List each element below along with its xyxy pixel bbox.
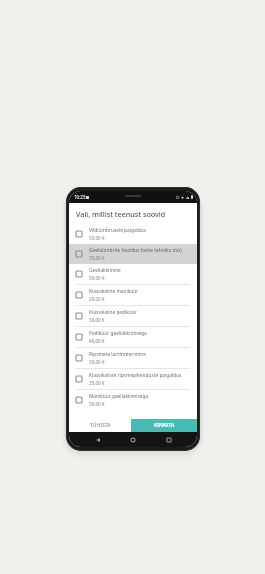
button[interactable]: Klassikaliste ripsmepikenduste paigaldus (69, 369, 197, 389)
staticText: 35,00 € (89, 255, 105, 261)
staticText: 40,00 € (89, 338, 105, 344)
button[interactable]: Klassikaline maniküür (69, 285, 197, 305)
staticText: Maniküür geellakkimisega (89, 393, 149, 400)
staticText: Klassikaline maniküür (89, 288, 139, 295)
button[interactable]: TÜHISTA (69, 419, 131, 432)
button[interactable]: Geelüümbrite hooldus (teise tehniku töö) (69, 244, 197, 264)
staticText: Pediküür geellakkimisega (89, 330, 147, 337)
button[interactable]: Back (91, 433, 105, 447)
staticText: KINNITA (154, 422, 175, 429)
button[interactable]: Maniküür geellakkimisega (69, 390, 197, 410)
staticText: Ripsmete laminreerimine (89, 351, 146, 358)
staticText: 35,00 € (89, 380, 105, 386)
button[interactable]: Pediküür geellakkimisega (69, 327, 197, 347)
button[interactable]: Ripsmete laminreerimine (69, 348, 197, 368)
staticText: Vali, millist teenust soovid (76, 209, 166, 219)
button[interactable]: Klassikaline pediküür (69, 306, 197, 326)
staticText: 30,00 € (89, 401, 105, 407)
staticText: 30,00 € (89, 359, 105, 365)
staticText: Geelüümbrite hooldus (teise tehniku töö) (89, 247, 182, 254)
button[interactable]: Home (126, 433, 140, 447)
button[interactable]: KINNITA (131, 419, 197, 432)
staticText: Klassikaline pediküür (89, 309, 137, 316)
staticText: 50,00 € (89, 235, 105, 241)
staticText: 30,00 € (89, 275, 105, 281)
staticText: 10:25 (74, 194, 86, 200)
staticText: Vildiümbrusele paigaldus (89, 227, 147, 234)
staticText: 20,00 € (89, 296, 105, 302)
button[interactable]: Vildiümbrusele paigaldus (69, 224, 197, 244)
button[interactable]: Recent apps (162, 433, 176, 447)
staticText: TÜHISTA (90, 422, 111, 429)
staticText: Klassikaliste ripsmepikenduste paigaldus (89, 372, 182, 379)
button[interactable]: Geellakkimine (69, 264, 197, 284)
staticText: Geellakkimine (89, 267, 121, 274)
staticText: 30,00 € (89, 317, 105, 323)
